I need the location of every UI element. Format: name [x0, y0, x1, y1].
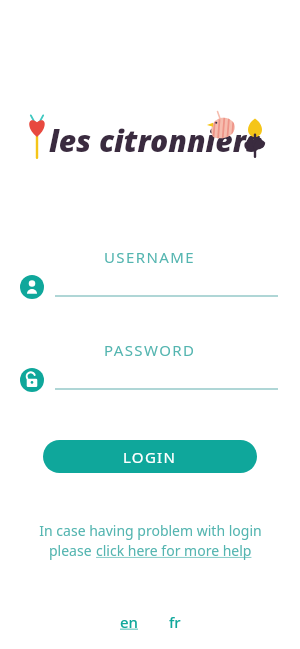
staticText: PASSWORD — [104, 340, 196, 360]
staticText: please — [49, 541, 96, 560]
staticText: fr — [169, 612, 181, 632]
button[interactable]: In case having problem with login — [0, 521, 300, 560]
staticText: In case having problem with login — [39, 521, 262, 540]
staticText: LOGIN — [123, 447, 177, 467]
staticText: click here for more help — [96, 541, 252, 560]
button[interactable]: Password field — [0, 368, 300, 394]
staticText: les citronniers — [49, 120, 261, 161]
staticText: USERNAME — [104, 247, 196, 267]
staticText: en — [120, 612, 139, 632]
button[interactable]: LOGIN — [43, 440, 257, 473]
button[interactable]: fr — [163, 610, 187, 634]
button[interactable]: en — [114, 610, 145, 634]
button[interactable]: Username field — [0, 275, 300, 301]
